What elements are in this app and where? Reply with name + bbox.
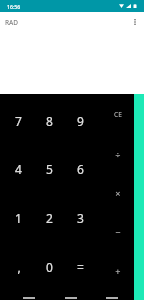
- staticText: 3: [77, 210, 84, 226]
- button[interactable]: More options: [126, 12, 144, 32]
- button[interactable]: 2: [34, 193, 65, 242]
- staticText: 9: [77, 113, 84, 129]
- button[interactable]: 6: [65, 145, 96, 193]
- staticText: CE: [114, 110, 122, 119]
- staticText: 2: [46, 210, 53, 226]
- button[interactable]: CE: [101, 94, 134, 134]
- button[interactable]: Recents: [91, 291, 132, 300]
- button[interactable]: 4: [3, 145, 34, 193]
- staticText: 0: [46, 259, 53, 275]
- staticText: 8: [46, 113, 53, 129]
- staticText: 16:56: [7, 3, 21, 10]
- button[interactable]: ÷: [101, 134, 134, 174]
- button[interactable]: 0: [34, 242, 65, 291]
- button[interactable]: ,: [3, 242, 34, 291]
- staticText: ÷: [115, 148, 121, 161]
- button[interactable]: 8: [34, 97, 65, 145]
- staticText: =: [77, 259, 84, 275]
- button[interactable]: ×: [101, 174, 134, 213]
- staticText: 7: [15, 113, 22, 129]
- staticText: 6: [77, 161, 84, 177]
- button[interactable]: 9: [65, 97, 96, 145]
- staticText: ,: [17, 259, 21, 275]
- button[interactable]: +: [101, 252, 134, 291]
- button[interactable]: RAD: [1, 14, 23, 31]
- button[interactable]: 3: [65, 193, 96, 242]
- staticText: 1: [15, 210, 22, 226]
- staticText: +: [115, 265, 121, 278]
- button[interactable]: Back: [8, 291, 50, 300]
- staticText: ×: [115, 187, 121, 200]
- button[interactable]: =: [65, 242, 96, 291]
- button[interactable]: 1: [3, 193, 34, 242]
- button[interactable]: 5: [34, 145, 65, 193]
- button[interactable]: 7: [3, 97, 34, 145]
- button[interactable]: −: [101, 213, 134, 252]
- staticText: 4: [15, 161, 22, 177]
- staticText: 5: [46, 161, 53, 177]
- staticText: −: [115, 226, 121, 239]
- staticText: RAD: [5, 18, 19, 27]
- button[interactable]: Home: [50, 291, 91, 300]
